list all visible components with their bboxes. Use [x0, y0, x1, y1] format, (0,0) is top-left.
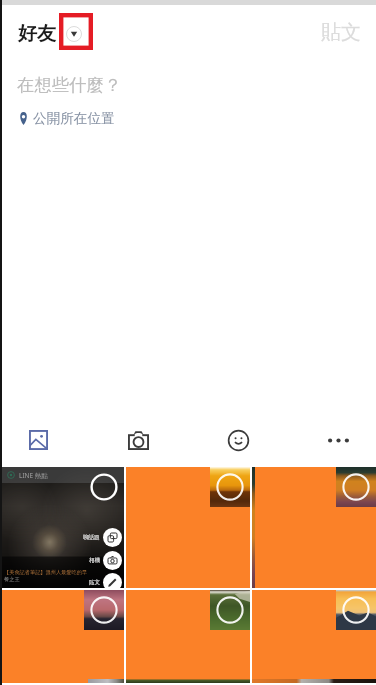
button[interactable]: 好友 [18, 22, 82, 46]
button[interactable]: LINE 熱點 [0, 467, 124, 588]
button[interactable]: Sticker [219, 421, 257, 459]
staticText: 公開所在位置 [33, 110, 115, 127]
staticText: LINE 熱點 [19, 471, 48, 480]
button[interactable]: 貼文 [303, 16, 376, 49]
other: Audience selector [66, 26, 82, 42]
staticText: 好友 [18, 22, 56, 46]
button[interactable] [252, 467, 376, 588]
staticText: 貼文 [89, 579, 100, 586]
staticText: 餐之王 [4, 576, 20, 583]
button[interactable]: Camera [119, 421, 157, 459]
staticText: 在想些什麼？ [17, 74, 122, 96]
staticText: 聊話題 [83, 534, 100, 541]
button[interactable]: More options [319, 421, 357, 459]
button[interactable] [126, 467, 250, 588]
button[interactable] [0, 590, 124, 679]
button[interactable]: 公開所在位置 [19, 110, 127, 127]
button[interactable] [126, 590, 250, 679]
button[interactable]: Photo [19, 421, 57, 459]
button[interactable]: 貼文 [89, 573, 122, 592]
staticText: 貼文 [321, 20, 361, 45]
button[interactable] [252, 590, 376, 679]
staticText: 【美食記者筆記】溫州人最愛吃的早 [4, 569, 87, 576]
button[interactable]: 相機 [89, 551, 122, 570]
staticText: 相機 [89, 557, 100, 564]
button[interactable]: 聊話題 [83, 528, 122, 547]
